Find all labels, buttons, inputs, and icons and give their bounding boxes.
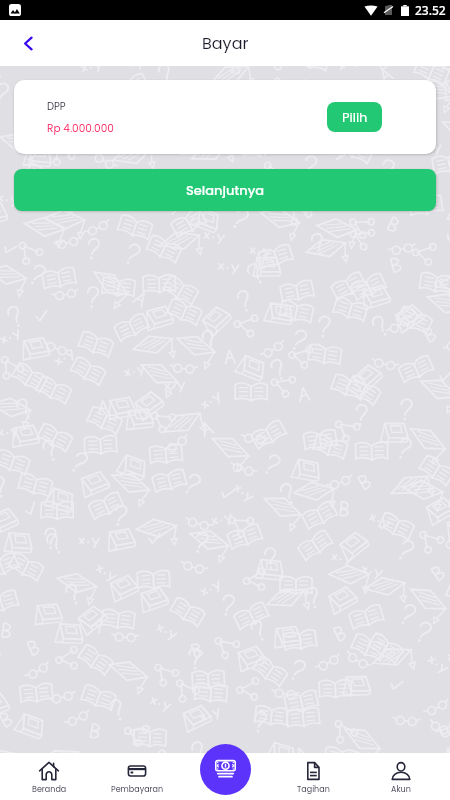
button[interactable]: Pilih: [327, 102, 382, 132]
staticText: Pilih: [342, 108, 368, 126]
button[interactable]: Pay: [200, 744, 251, 795]
button[interactable]: Akun: [357, 753, 445, 800]
staticText: 23.52: [415, 2, 446, 18]
button[interactable]: Pembayaran: [93, 753, 181, 800]
staticText: Akun: [391, 784, 411, 795]
staticText: DPP: [47, 99, 66, 113]
staticText: Beranda: [32, 784, 67, 795]
staticText: Pembayaran: [111, 784, 164, 795]
staticText: Selanjutnya: [186, 181, 265, 199]
button[interactable]: Back: [10, 25, 46, 61]
button[interactable]: Selanjutnya: [14, 169, 436, 211]
staticText: Bayar: [202, 32, 249, 54]
button[interactable]: Tagihan: [269, 753, 357, 800]
staticText: Rp 4.000.000: [47, 121, 114, 136]
staticText: Tagihan: [297, 784, 330, 795]
button[interactable]: Beranda: [5, 753, 93, 800]
